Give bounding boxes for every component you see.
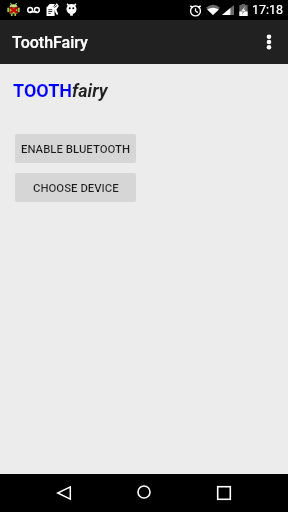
staticText: TOOTHfairy — [13, 80, 108, 101]
button[interactable]: More options — [244, 20, 288, 64]
staticText: ENABLE BLUETOOTH — [21, 142, 131, 155]
staticText: ToothFairy — [12, 33, 88, 52]
button[interactable]: Back — [36, 474, 92, 512]
staticText: 17:18 — [252, 2, 284, 17]
button[interactable]: Home — [116, 474, 172, 512]
button[interactable]: ENABLE BLUETOOTH — [15, 134, 136, 163]
button[interactable]: CHOOSE DEVICE — [15, 173, 136, 202]
button[interactable]: Recent apps — [196, 474, 252, 512]
staticText: CHOOSE DEVICE — [33, 181, 119, 194]
